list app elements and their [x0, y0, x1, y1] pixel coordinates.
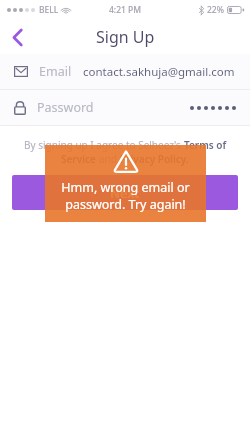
button[interactable]: Email: [0, 54, 250, 89]
button[interactable]: Dismiss error: [45, 145, 206, 222]
staticText: 4:21 PM: [109, 4, 142, 16]
staticText: Terms of: [184, 138, 227, 152]
staticText: Password: [37, 99, 94, 116]
button[interactable]: Back: [0, 20, 34, 54]
staticText: Next: [110, 184, 140, 202]
staticText: By signing up I agree to Selheez's: [24, 138, 184, 152]
staticText: contact.sakhuja@gmail.com: [83, 64, 235, 80]
staticText: and: [99, 152, 120, 166]
staticText: Hmm, wrong email or password. Try again!: [45, 179, 206, 212]
staticText: Privacy Policy.: [120, 152, 189, 166]
staticText: Service: [61, 152, 99, 166]
staticText: BELL: [39, 4, 59, 16]
staticText: 22%: [207, 4, 224, 16]
staticText: Sign Up: [96, 26, 155, 48]
staticText: Email: [39, 63, 72, 80]
button[interactable]: Password: [0, 90, 250, 125]
button[interactable]: Next: [12, 175, 238, 210]
